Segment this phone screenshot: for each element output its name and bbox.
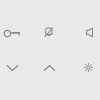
button[interactable]: Scroll Down [0, 56, 28, 80]
button[interactable]: Lock [0, 20, 28, 46]
button[interactable]: Silent Mode [33, 19, 65, 45]
button[interactable]: Scroll Up [33, 56, 65, 80]
button[interactable]: Mute [73, 19, 100, 45]
button[interactable]: Brightness [72, 56, 100, 80]
